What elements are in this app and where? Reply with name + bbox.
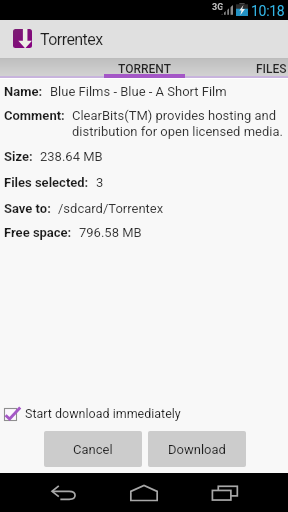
staticText: 3G (212, 2, 224, 13)
button[interactable]: Back (40, 473, 88, 512)
staticText: Name: (4, 84, 43, 99)
button[interactable]: Cancel (44, 431, 142, 467)
button[interactable]: Home (120, 473, 168, 512)
staticText: ClearBits(TM) provides hosting and distr… (72, 108, 285, 139)
staticText: Start download immediately (25, 406, 181, 421)
staticText: Save to: (4, 201, 51, 216)
staticText: FILES (256, 62, 287, 76)
staticText: Download (168, 442, 226, 457)
staticText: Comment: (4, 108, 65, 123)
button[interactable]: Recent apps (201, 473, 249, 512)
staticText: Blue Films - Blue - A Short Film (50, 84, 227, 99)
staticText: Files selected: (4, 175, 89, 190)
staticText: /sdcard/Torrentex (58, 201, 164, 216)
staticText: Torrentex (40, 30, 103, 49)
staticText: Size: (4, 149, 33, 164)
button[interactable]: FILES (232, 58, 288, 76)
staticText: 238.64 MB (40, 149, 103, 164)
button[interactable]: Download (148, 431, 246, 467)
staticText: 796.58 MB (79, 225, 142, 240)
staticText: TORRENT (118, 62, 171, 76)
staticText: Free space: (4, 225, 72, 240)
button[interactable]: Start download immediately (4, 407, 285, 422)
staticText: 10:18 (251, 3, 285, 19)
staticText: Cancel (73, 442, 113, 457)
button[interactable]: TORRENT (104, 58, 185, 76)
staticText: 3 (96, 175, 104, 190)
